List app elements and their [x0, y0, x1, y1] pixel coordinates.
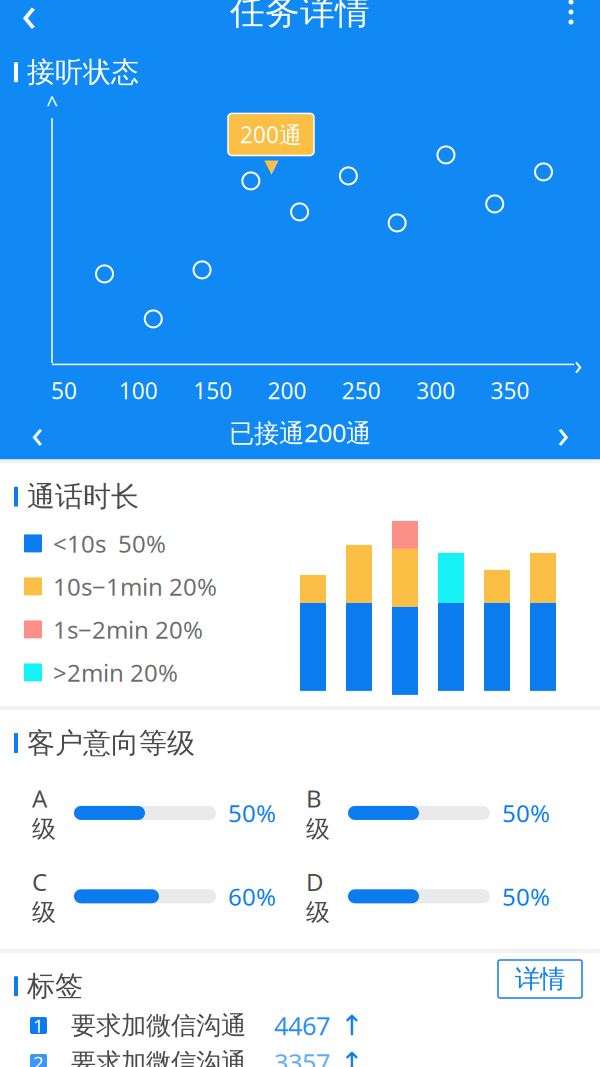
staticText: 客户意向等级 — [27, 726, 195, 760]
staticText: >2min 20% — [53, 656, 178, 688]
button[interactable]: 更多 — [542, 0, 600, 43]
staticText: ▼ — [264, 155, 278, 177]
staticText: › — [557, 406, 569, 459]
button[interactable]: 1 — [0, 1007, 600, 1044]
staticText: 4467 — [274, 1009, 330, 1042]
staticText: 50% — [502, 797, 550, 829]
staticText: 要求加微信沟通 — [71, 1010, 246, 1041]
staticText: 50% — [228, 797, 276, 829]
staticText: D级 — [306, 866, 330, 927]
staticText: B级 — [306, 782, 330, 844]
staticText: 1 — [33, 1013, 44, 1038]
button[interactable]: 返回 — [0, 0, 58, 43]
staticText: 350 — [490, 375, 529, 405]
staticText: 150 — [193, 375, 232, 405]
staticText: ‹ — [21, 0, 37, 46]
button[interactable]: 2 — [0, 1044, 600, 1067]
staticText: 2 — [33, 1050, 44, 1067]
staticText: › — [574, 347, 582, 382]
staticText: 标签 — [27, 969, 83, 1003]
staticText: <10s 50% — [53, 527, 166, 559]
button[interactable]: 下一页 — [532, 409, 594, 455]
staticText: 60% — [228, 880, 276, 912]
staticText: 10s−1min 20% — [53, 570, 217, 602]
staticText: 要求加微信沟通 — [71, 1047, 246, 1067]
staticText: 250 — [342, 375, 381, 405]
staticText: 已接通200通 — [229, 416, 371, 449]
staticText: 300 — [416, 375, 455, 405]
button[interactable]: 上一页 — [6, 409, 68, 455]
staticText: 100 — [119, 375, 158, 405]
staticText: 接听状态 — [27, 55, 139, 89]
staticText: 1s−2min 20% — [53, 613, 203, 645]
staticText: A级 — [32, 782, 56, 844]
staticText: 50% — [502, 880, 550, 912]
staticText: ↑ — [340, 1010, 363, 1041]
staticText: ↑ — [340, 1047, 363, 1067]
staticText: 50 — [51, 375, 77, 405]
staticText: ^ — [46, 90, 58, 118]
button[interactable]: 详情 — [498, 960, 582, 998]
staticText: 详情 — [515, 963, 565, 994]
staticText: 200 — [267, 375, 306, 405]
staticText: 任务详情 — [230, 0, 370, 33]
staticText: 200通 — [240, 119, 302, 149]
staticText: 通话时长 — [27, 479, 139, 514]
staticText: ‹ — [31, 406, 43, 459]
staticText: C级 — [32, 866, 56, 927]
staticText: 3357 — [274, 1046, 330, 1067]
